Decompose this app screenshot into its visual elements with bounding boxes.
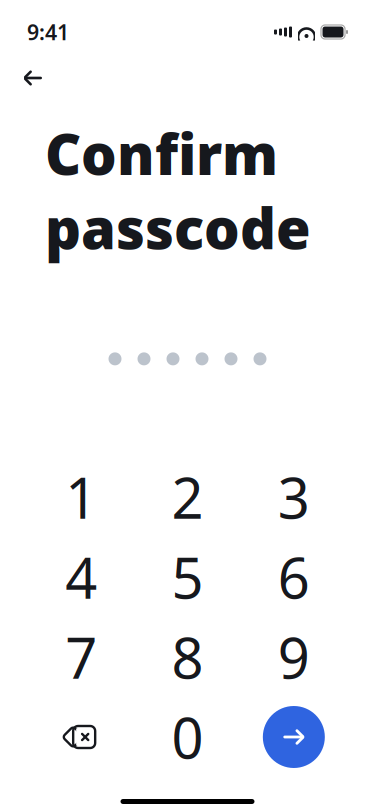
staticText: 7 — [65, 620, 97, 694]
staticText: 3 — [278, 460, 310, 534]
button[interactable]: 9 — [241, 617, 347, 697]
staticText: 6 — [278, 540, 310, 614]
button[interactable]: 6 — [241, 537, 347, 617]
button[interactable]: 0 — [134, 697, 241, 777]
button[interactable]: 7 — [28, 617, 134, 697]
staticText: 8 — [171, 620, 203, 694]
staticText: Confirm passcode — [45, 116, 311, 265]
staticText: 1 — [65, 460, 97, 534]
button[interactable]: Continue — [241, 697, 347, 777]
button[interactable]: Back — [11, 56, 55, 100]
staticText: 0 — [171, 700, 203, 774]
staticText: 2 — [171, 460, 203, 534]
staticText: 9 — [278, 620, 310, 694]
staticText: 9:41 — [27, 18, 69, 46]
staticText: 5 — [171, 540, 203, 614]
button[interactable]: 2 — [134, 457, 241, 537]
button[interactable]: 8 — [134, 617, 241, 697]
button[interactable]: 4 — [28, 537, 134, 617]
button[interactable]: 1 — [28, 457, 134, 537]
staticText: 4 — [65, 540, 97, 614]
button[interactable]: 5 — [134, 537, 241, 617]
button[interactable]: 3 — [241, 457, 347, 537]
button[interactable]: Delete — [28, 697, 134, 777]
